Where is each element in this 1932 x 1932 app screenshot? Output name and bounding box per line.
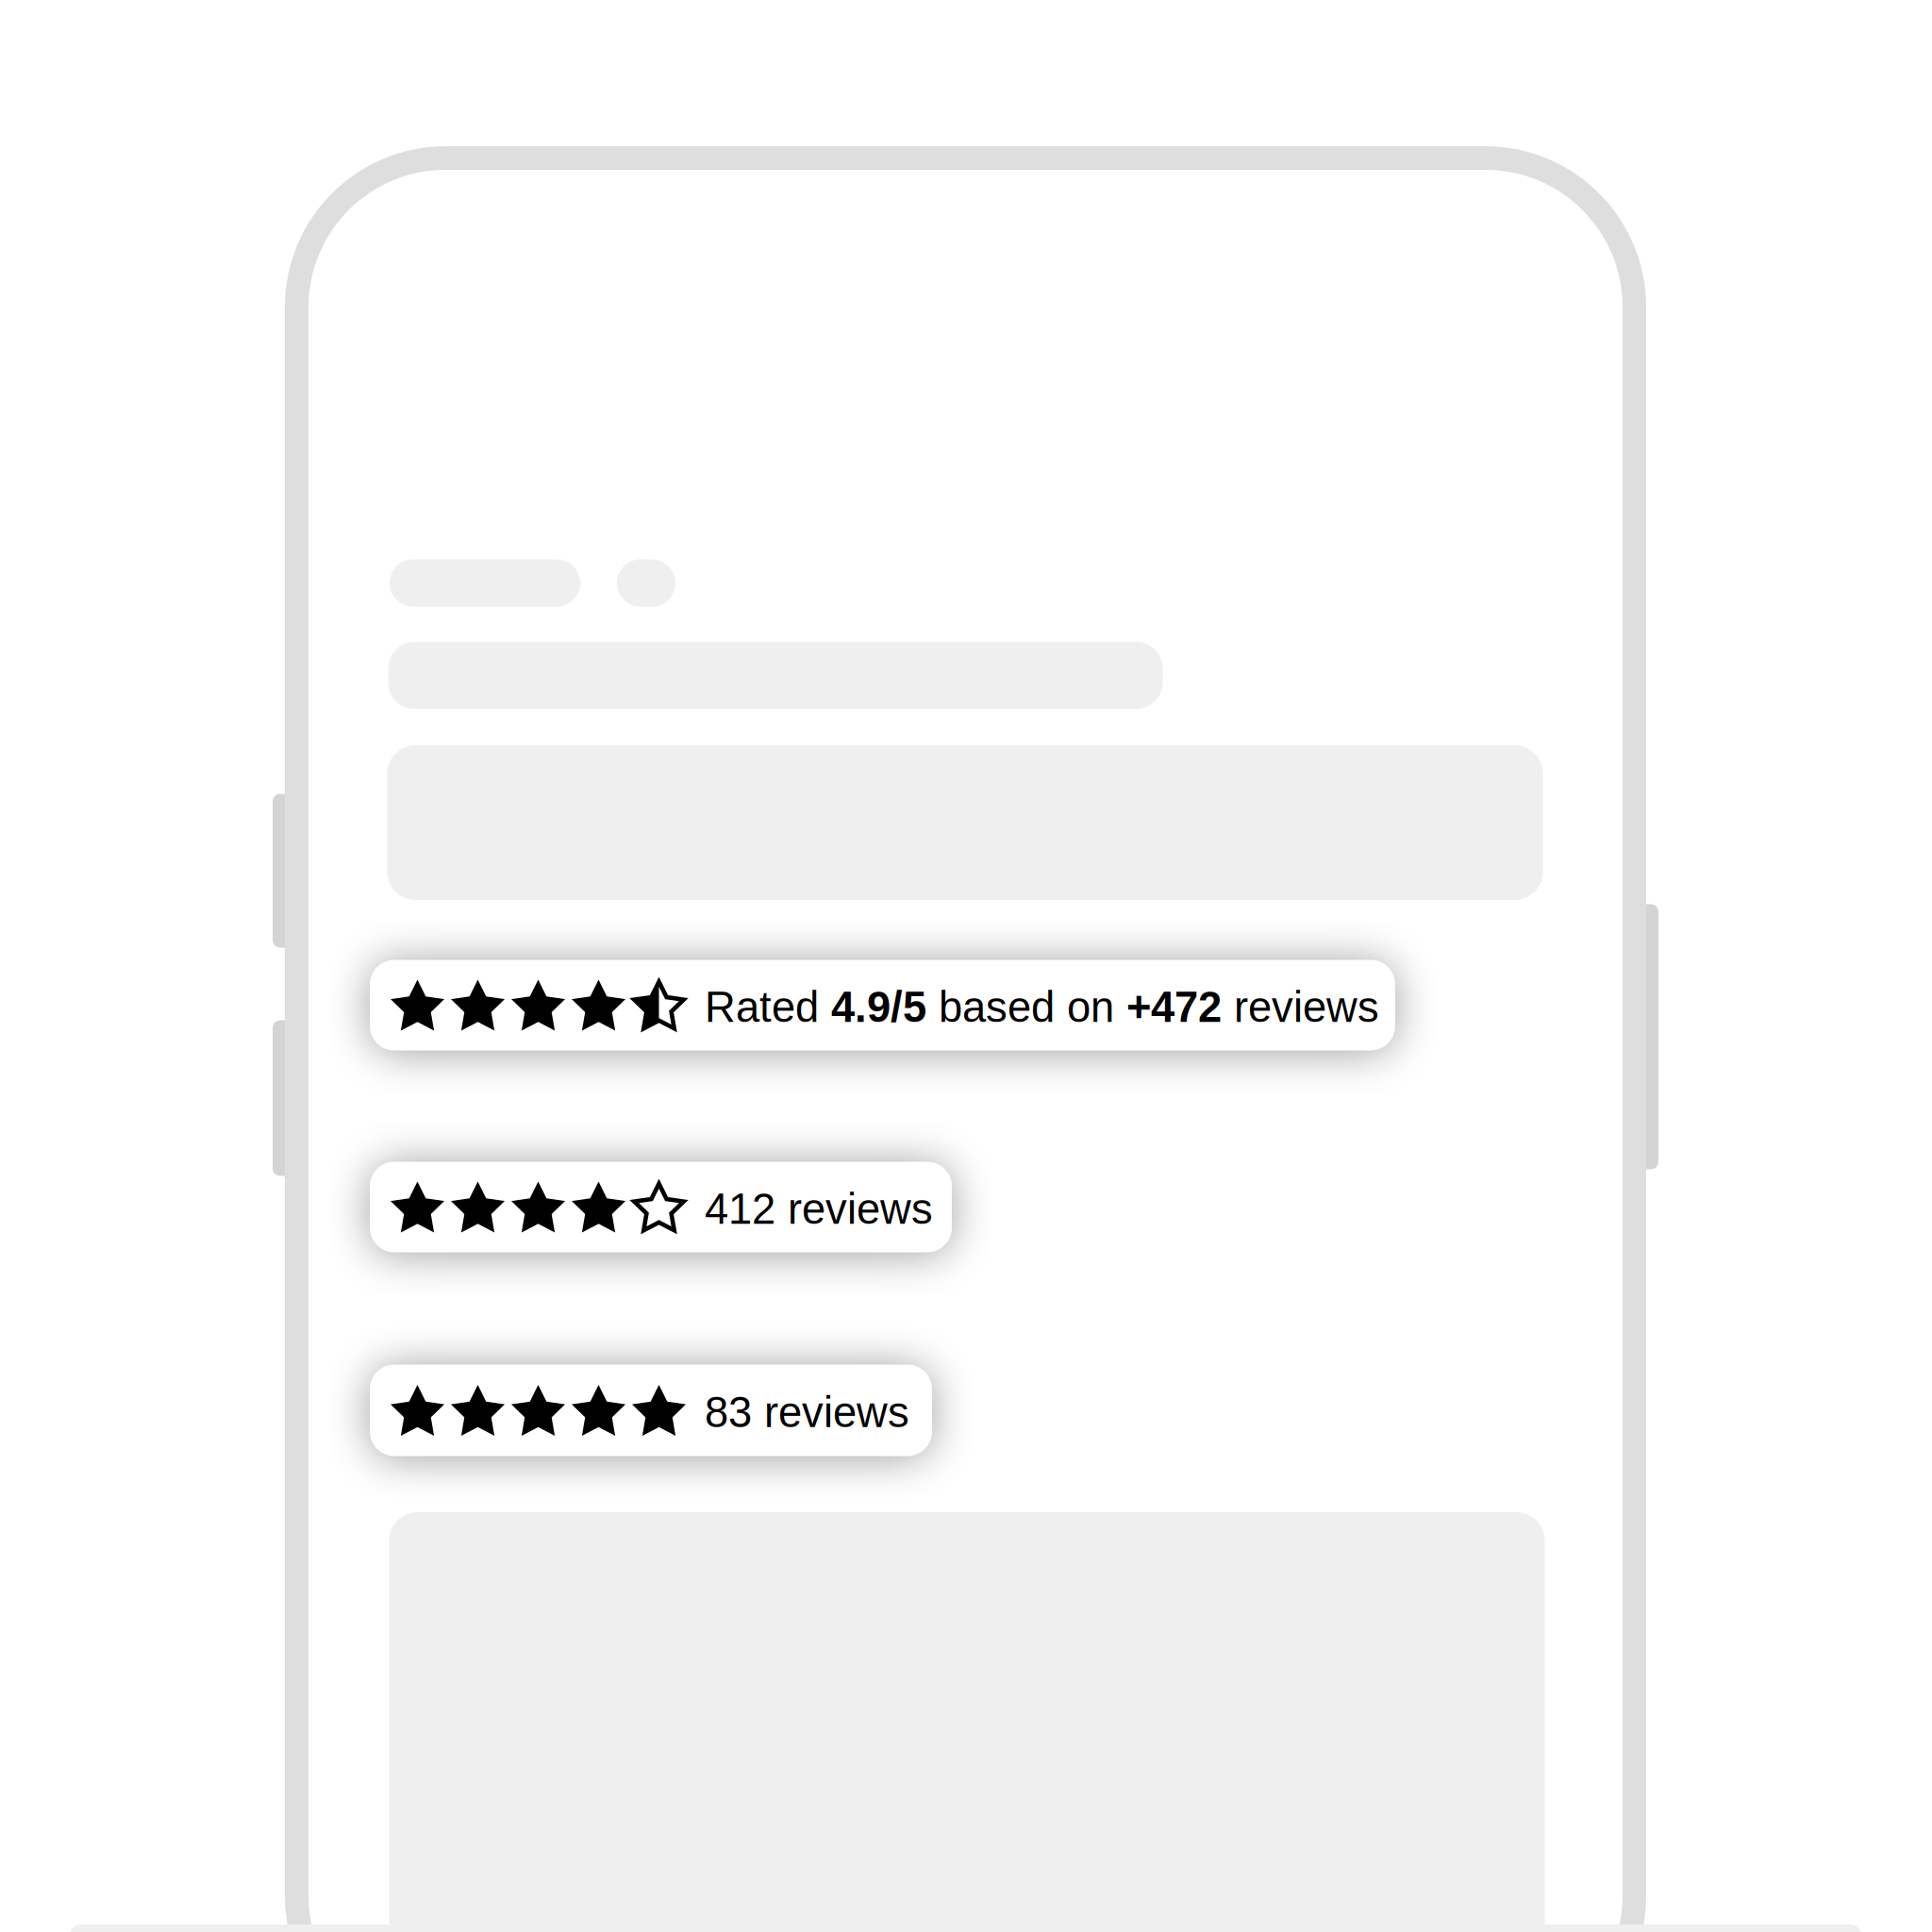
button[interactable]: 83 reviews [370,1365,932,1456]
staticText: Rated 4.9/5 based on +472 reviews [705,984,1379,1030]
staticText: 412 reviews [705,1185,933,1233]
button[interactable]: Rated 4.9/5 based on +472 reviews [370,960,1395,1050]
button[interactable]: 412 reviews [370,1162,952,1252]
staticText: 83 reviews [705,1388,909,1436]
